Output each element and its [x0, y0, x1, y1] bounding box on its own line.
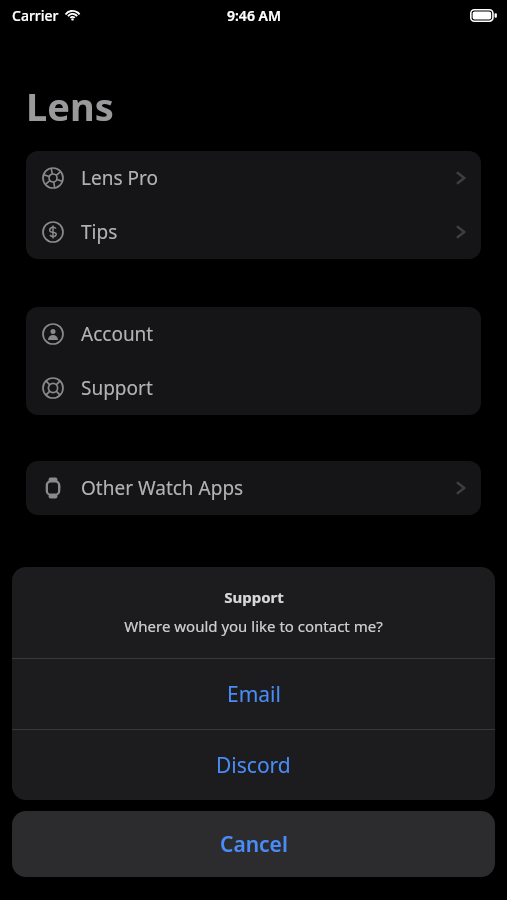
button[interactable]: Tips — [26, 205, 481, 259]
staticText: Cancel — [220, 830, 288, 859]
staticText: Lens — [26, 80, 114, 132]
staticText: Tips — [81, 219, 118, 245]
staticText: Support — [224, 587, 284, 607]
staticText: 9:46 AM — [227, 6, 281, 25]
staticText: Discord — [216, 751, 291, 780]
button[interactable]: Other Watch Apps — [26, 461, 481, 515]
staticText: Support — [81, 375, 153, 401]
staticText: Where would you like to contact me? — [124, 616, 383, 636]
staticText: Account — [81, 321, 154, 347]
staticText: Lens Pro — [81, 165, 158, 191]
staticText: Carrier — [12, 6, 59, 25]
button[interactable]: Lens Pro — [26, 151, 481, 205]
button[interactable]: Account — [26, 307, 481, 361]
button[interactable]: Email — [12, 659, 495, 729]
staticText: Other Watch Apps — [81, 475, 244, 501]
button[interactable]: Cancel — [12, 811, 495, 877]
button[interactable]: Support — [26, 361, 481, 415]
staticText: Email — [227, 680, 281, 709]
button[interactable]: Discord — [12, 730, 495, 800]
